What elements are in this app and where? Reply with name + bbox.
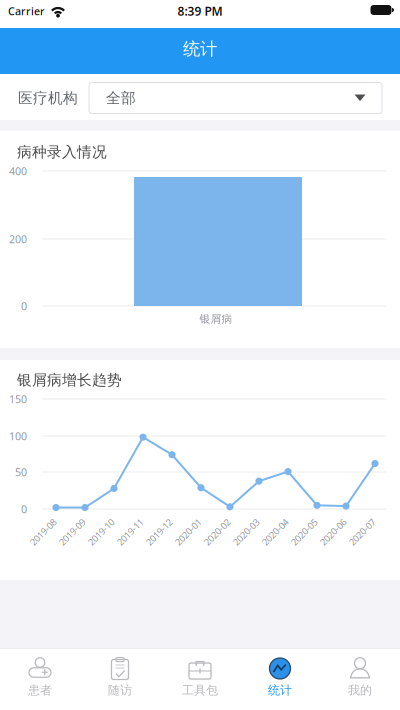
staticText: 银屑病增长趋势	[17, 371, 122, 389]
staticText: 2019-11	[113, 526, 146, 538]
staticText: 400	[9, 164, 27, 178]
staticText: 全部	[106, 89, 136, 107]
button[interactable]: 患者	[0, 649, 80, 710]
staticText: 2020-06	[316, 526, 349, 538]
button[interactable]: 随访	[80, 649, 160, 710]
staticText: 我的	[348, 683, 372, 698]
staticText: 2020-05	[287, 526, 320, 538]
staticText: 统计	[268, 683, 292, 698]
staticText: 200	[9, 232, 27, 246]
button[interactable]: 工具包	[160, 649, 240, 710]
staticText: 2019-12	[142, 526, 175, 538]
staticText: 100	[9, 429, 27, 443]
staticText: 150	[9, 392, 27, 406]
staticText: 50	[15, 465, 27, 479]
staticText: 2019-10	[84, 526, 117, 538]
staticText: 病种录入情况	[17, 143, 107, 161]
staticText: 随访	[108, 683, 132, 698]
staticText: 0	[21, 502, 27, 516]
staticText: 2019-08	[26, 526, 59, 538]
staticText: 统计	[183, 38, 217, 60]
staticText: 2020-04	[258, 526, 291, 538]
staticText: 2020-07	[345, 526, 378, 538]
staticText: 工具包	[182, 683, 218, 698]
staticText: 0	[21, 299, 27, 313]
staticText: 患者	[28, 683, 52, 698]
staticText: 医疗机构	[18, 89, 78, 107]
staticText: 2020-02	[200, 526, 233, 538]
button[interactable]: 全部	[89, 82, 382, 113]
staticText: 2020-01	[171, 526, 204, 538]
staticText: 8:39 PM	[177, 3, 222, 19]
staticText: 2019-09	[55, 526, 88, 538]
staticText: 银屑病	[199, 312, 232, 325]
staticText: 2020-03	[229, 526, 262, 538]
button[interactable]: 统计	[240, 649, 320, 710]
staticText: Carrier	[8, 4, 45, 18]
button[interactable]: 我的	[320, 649, 400, 710]
